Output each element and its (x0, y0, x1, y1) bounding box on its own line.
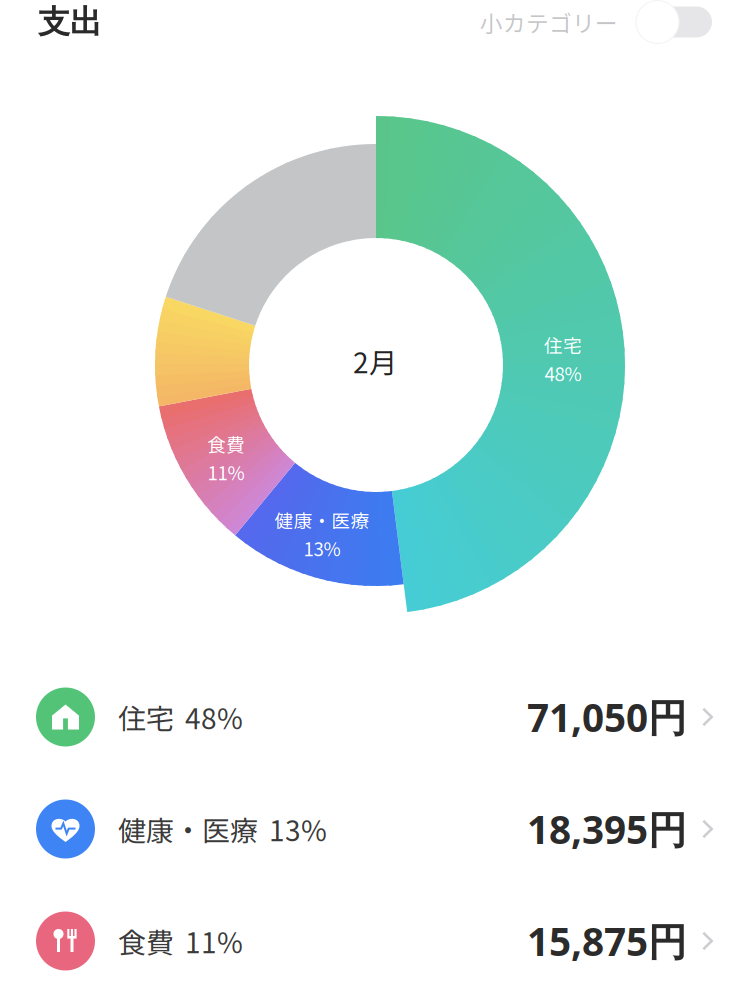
staticText: 71,050円 (527, 691, 687, 743)
staticText: 住宅 (118, 697, 174, 737)
button[interactable]: 食費 (0, 885, 750, 985)
staticText: 18,395円 (527, 803, 687, 855)
staticText: 11% (185, 921, 243, 961)
staticText: 11% (207, 458, 244, 485)
staticText: 13% (303, 534, 340, 561)
button[interactable]: 小カテゴリー (480, 0, 750, 44)
staticText: 健康・医療 (118, 809, 258, 849)
staticText: 48% (185, 697, 243, 737)
staticText: 食費 (118, 921, 174, 961)
staticText: 支出 (38, 2, 102, 42)
staticText: 住宅 (544, 331, 582, 358)
button[interactable]: 健康・医療 (0, 773, 750, 885)
button[interactable]: 住宅 (0, 661, 750, 773)
staticText: 2月 (353, 341, 397, 381)
staticText: 小カテゴリー (480, 6, 618, 38)
staticText: 食費 (207, 430, 245, 457)
staticText: 48% (544, 359, 581, 386)
staticText: 健康・医療 (274, 506, 369, 533)
staticText: 15,875円 (527, 915, 687, 967)
staticText: 13% (269, 809, 327, 849)
